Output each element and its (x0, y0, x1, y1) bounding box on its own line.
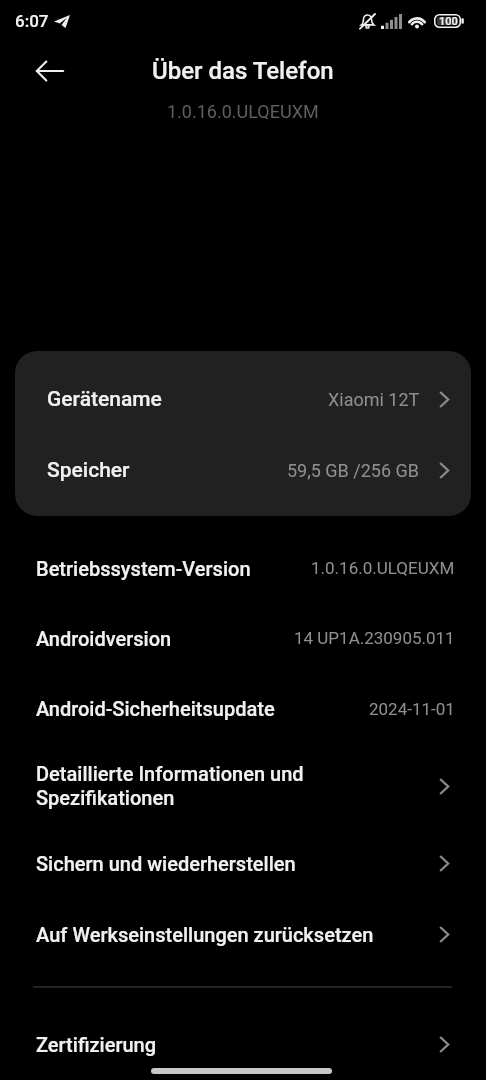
staticText: Detaillierte Informationen und Spezifika… (36, 762, 439, 810)
staticText: Auf Werkseinstellungen zurücksetzen (36, 923, 439, 946)
button[interactable]: Auf Werkseinstellungen zurücksetzen (0, 899, 486, 970)
staticText: 6:07 (15, 11, 49, 31)
button[interactable]: Sichern und wiederherstellen (0, 828, 486, 899)
staticText: 1.0.16.0.ULQEUXM (311, 558, 455, 578)
button[interactable]: Detaillierte Informationen und Spezifika… (0, 744, 486, 828)
button[interactable]: Back (24, 45, 76, 97)
staticText: Xiaomi 12T (328, 389, 420, 410)
staticText: 59,5 GB /256 GB (287, 460, 420, 481)
staticText: Gerätename (47, 387, 162, 412)
staticText: 2024-11-01 (369, 699, 455, 719)
staticText: Android-Sicherheitsupdate (36, 697, 275, 720)
button[interactable]: Android-Sicherheitsupdate (0, 673, 486, 744)
staticText: 100 (439, 15, 458, 28)
staticText: Sichern und wiederherstellen (36, 852, 439, 875)
staticText: Über das Telefon (152, 57, 334, 85)
staticText: Androidversion (36, 627, 172, 650)
staticText: Betriebssystem-Version (36, 557, 251, 580)
button[interactable]: Speicher (15, 435, 471, 506)
staticText: 14 UP1A.230905.011 (294, 628, 455, 648)
staticText: 1.0.16.0.ULQEUXM (167, 103, 319, 119)
button[interactable]: Zertifizierung (0, 1009, 486, 1079)
staticText: Speicher (47, 458, 130, 483)
button[interactable]: Androidversion (0, 603, 486, 673)
button[interactable]: Gerätename (15, 364, 471, 435)
staticText: Zertifizierung (36, 1033, 439, 1056)
button[interactable]: Betriebssystem-Version (0, 533, 486, 603)
